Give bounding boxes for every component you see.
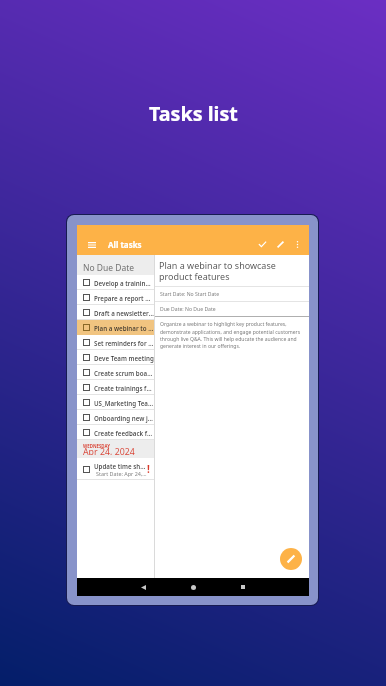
button[interactable]: Create feedback form for bbox=[77, 425, 154, 440]
staticText: Due Date: No Due Date bbox=[160, 306, 216, 313]
button[interactable]: Menu bbox=[77, 234, 107, 255]
button[interactable]: Home bbox=[184, 578, 202, 596]
button[interactable]: Create trainings for new bbox=[77, 380, 154, 395]
button[interactable]: Draft a newsletter to our bbox=[77, 305, 154, 320]
button[interactable]: US_Marketing Team sync bbox=[77, 395, 154, 410]
staticText: Deve Team meeting bbox=[94, 354, 154, 362]
staticText: Prepare a report on the bbox=[94, 294, 154, 302]
staticText: Start Date: Apr 24, 2024 bbox=[96, 470, 147, 477]
staticText: Draft a newsletter to our bbox=[94, 309, 154, 317]
staticText: WEDNESDAY bbox=[83, 443, 111, 449]
button[interactable]: Create scrum board for the bbox=[77, 365, 154, 380]
button[interactable]: Onboarding new joiners bbox=[77, 410, 154, 425]
button[interactable]: More options bbox=[289, 234, 305, 255]
staticText: US_Marketing Team sync bbox=[94, 399, 154, 407]
staticText: Onboarding new joiners bbox=[94, 414, 154, 422]
staticText: Create scrum board for the bbox=[94, 369, 154, 377]
button[interactable]: Set reminders for calendar bbox=[77, 335, 154, 350]
staticText: Update time sheets for bbox=[94, 462, 147, 470]
staticText: No Due Date bbox=[83, 262, 135, 274]
button[interactable]: Plan a webinar to showcase bbox=[77, 320, 154, 335]
staticText: Organize a webinar to highlight key prod… bbox=[160, 321, 301, 349]
staticText: Tasks list bbox=[149, 100, 238, 127]
staticText: Create trainings for new bbox=[94, 384, 154, 392]
staticText: All tasks bbox=[108, 239, 142, 250]
button[interactable]: Develop a training plan bbox=[77, 275, 154, 290]
staticText: Create feedback form for bbox=[94, 429, 154, 437]
button[interactable]: Back bbox=[134, 578, 152, 596]
button[interactable]: Deve Team meeting bbox=[77, 350, 154, 365]
staticText: Start Date: No Start Date bbox=[160, 291, 220, 298]
staticText: Develop a training plan bbox=[94, 279, 154, 287]
staticText: Plan a webinar to showcase bbox=[94, 324, 154, 332]
staticText: Apr 24, 2024 bbox=[83, 446, 135, 455]
button[interactable]: Prepare a report on the bbox=[77, 290, 154, 305]
button[interactable]: Recents bbox=[234, 578, 252, 596]
staticText: Set reminders for calendar bbox=[94, 339, 154, 347]
button[interactable]: Update time sheets for bbox=[77, 458, 154, 480]
button[interactable]: Edit bbox=[271, 234, 289, 255]
button[interactable]: Edit task bbox=[280, 548, 302, 570]
staticText: Plan a webinar to showcase product featu… bbox=[159, 259, 291, 282]
button[interactable]: Done bbox=[253, 234, 271, 255]
